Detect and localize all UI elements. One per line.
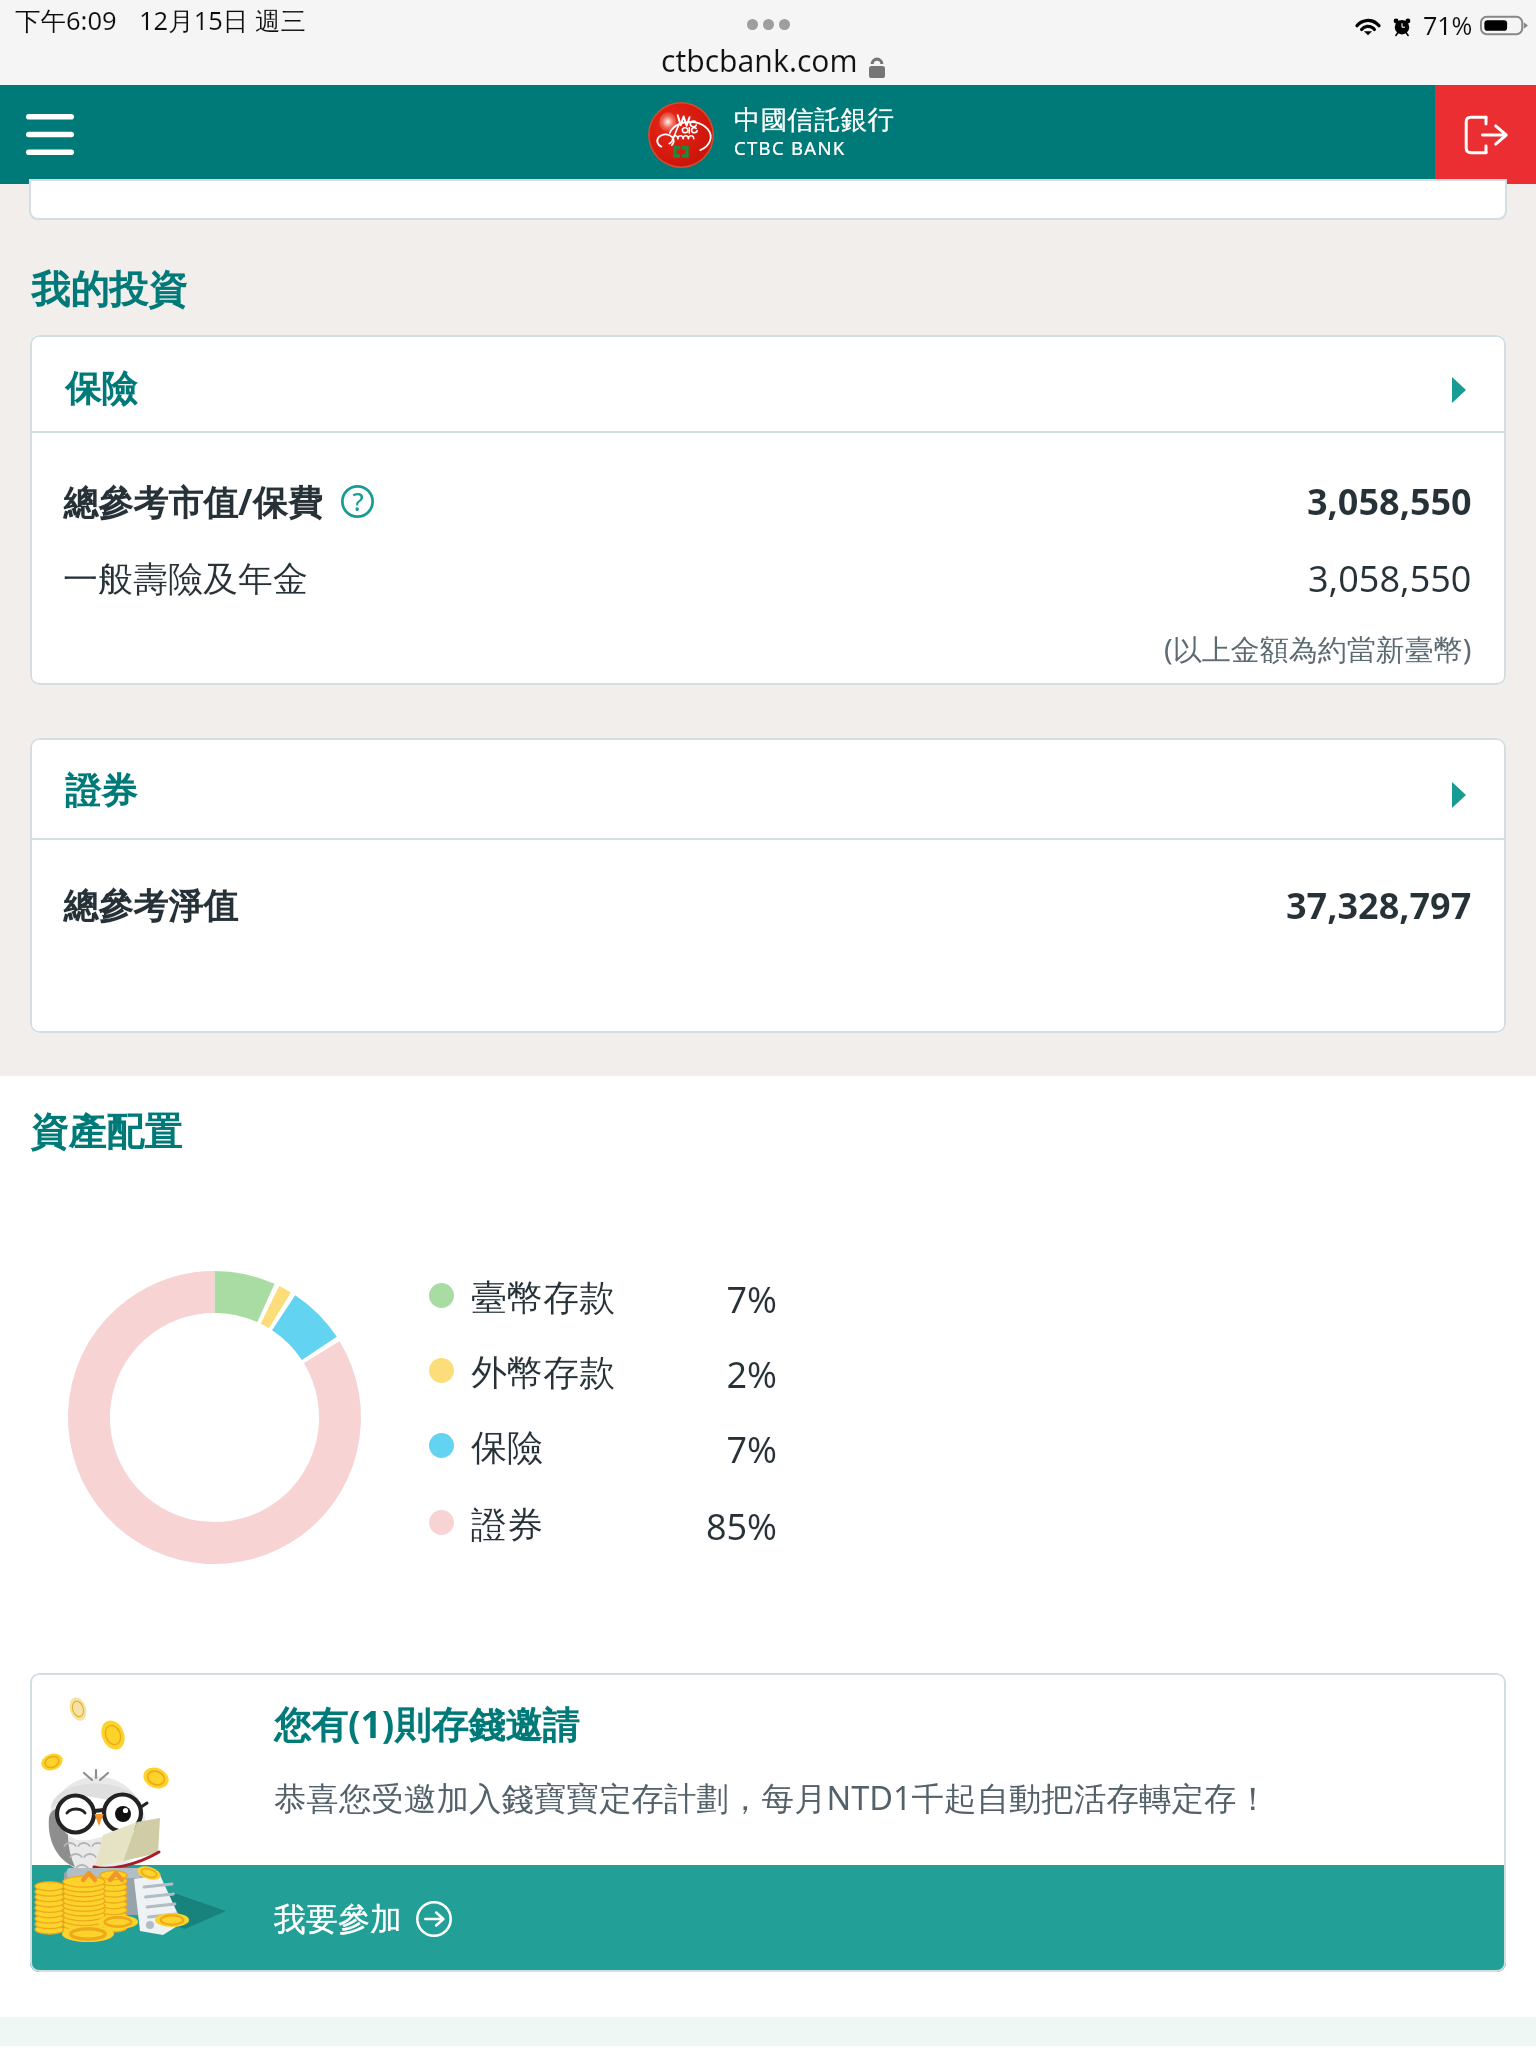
button[interactable]: 中國信託銀行 bbox=[648, 85, 934, 184]
button[interactable]: Help bbox=[340, 484, 375, 519]
staticText: CTBC BANK bbox=[734, 135, 846, 160]
staticText: 外幣存款 bbox=[471, 1350, 615, 1390]
staticText: ctbcbank.com bbox=[661, 40, 858, 81]
staticText: 總參考淨值 bbox=[63, 884, 238, 928]
staticText: 恭喜您受邀加入錢寶寶定存計劃，每月NTD1千起自動把活存轉定存！ bbox=[274, 1775, 1270, 1819]
staticText: 7% bbox=[689, 1425, 777, 1465]
staticText: 您有(1)則存錢邀請 bbox=[274, 1698, 580, 1749]
staticText: 保險 bbox=[65, 366, 137, 411]
staticText: 總參考市值/保費 bbox=[63, 478, 323, 526]
staticText: 7% bbox=[689, 1275, 777, 1315]
staticText: 71% bbox=[1423, 8, 1473, 42]
button[interactable]: 您有(1)則存錢邀請 bbox=[30, 1673, 1506, 1972]
button[interactable]: 證券 bbox=[30, 738, 1506, 838]
staticText: 85% bbox=[689, 1502, 777, 1542]
staticText: ? bbox=[352, 484, 364, 518]
staticText: 一般壽險及年金 bbox=[63, 557, 308, 601]
staticText: 3,058,550 bbox=[1307, 477, 1472, 526]
button[interactable]: 保險 bbox=[30, 335, 1506, 431]
staticText: 下午6:09 bbox=[15, 3, 117, 38]
staticText: 保險 bbox=[471, 1425, 543, 1465]
button[interactable]: Menu bbox=[0, 85, 100, 184]
staticText: 3,058,550 bbox=[1308, 554, 1472, 603]
staticText: 證券 bbox=[471, 1502, 543, 1542]
staticText: 中國信託銀行 bbox=[734, 103, 895, 136]
staticText: 37,328,797 bbox=[1286, 881, 1472, 930]
staticText: 臺幣存款 bbox=[471, 1275, 615, 1315]
staticText: 我要參加 bbox=[274, 1899, 402, 1939]
staticText: 我的投資 bbox=[31, 265, 187, 314]
button[interactable]: Logout bbox=[1435, 85, 1536, 184]
staticText: 2% bbox=[689, 1350, 777, 1390]
staticText: (以上金額為約當新臺幣) bbox=[1164, 629, 1472, 669]
staticText: 12月15日 週三 bbox=[139, 3, 306, 38]
staticText: 證券 bbox=[65, 768, 137, 813]
staticText: 資產配置 bbox=[30, 1108, 182, 1156]
button[interactable]: 我要參加 bbox=[30, 1865, 1506, 1972]
